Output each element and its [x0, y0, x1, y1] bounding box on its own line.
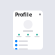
button[interactable]: [13, 39, 43, 43]
button[interactable]: [13, 43, 43, 47]
button[interactable]: [13, 47, 43, 51]
staticText: Profile: [15, 11, 32, 18]
